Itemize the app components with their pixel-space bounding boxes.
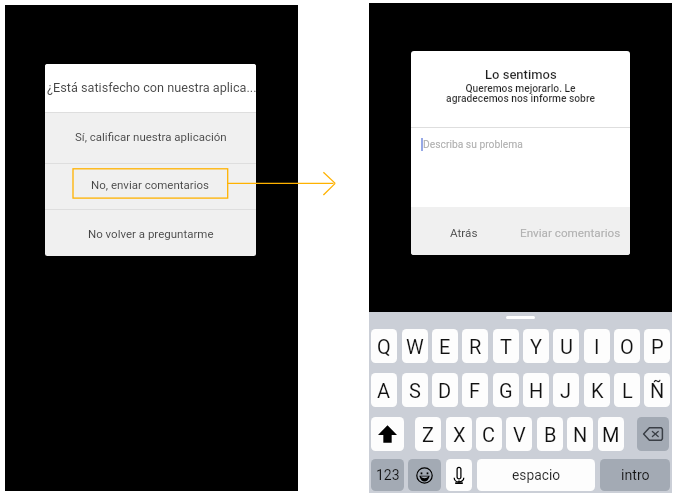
staticText: Z	[422, 423, 434, 446]
staticText: Y	[530, 335, 543, 358]
staticText: G	[499, 379, 513, 402]
staticText: H	[529, 379, 544, 402]
button[interactable]: Voice input	[446, 459, 472, 491]
button[interactable]: intro	[600, 459, 670, 491]
staticText: F	[469, 379, 481, 402]
staticText: espacio	[512, 467, 561, 483]
staticText: intro	[621, 467, 650, 484]
staticText: ¿Está satisfecho con nuestra aplica...	[47, 80, 256, 95]
button[interactable]: G	[493, 373, 519, 407]
staticText: U	[560, 335, 573, 358]
staticText: E	[439, 335, 451, 358]
button[interactable]: W	[402, 329, 428, 363]
button[interactable]: J	[553, 373, 579, 407]
button[interactable]: O	[614, 329, 640, 363]
button[interactable]: Q	[371, 329, 397, 363]
button[interactable]: D	[432, 373, 458, 407]
staticText: Describa su problema	[423, 138, 523, 150]
staticText: Sí, calificar nuestra aplicación	[75, 130, 227, 143]
staticText: N	[573, 423, 588, 446]
button[interactable]	[45, 64, 256, 112]
staticText: 123	[376, 467, 400, 483]
staticText: W	[406, 335, 424, 358]
staticText: I	[594, 335, 600, 358]
button[interactable]: K	[584, 373, 610, 407]
button[interactable]: Backspace	[637, 417, 669, 451]
staticText: Queremos mejorarlo. Le agradecemos nos i…	[446, 82, 595, 105]
button[interactable]: N	[567, 417, 593, 451]
staticText: J	[560, 379, 572, 402]
button[interactable]: espacio	[477, 459, 595, 491]
button[interactable]: H	[523, 373, 549, 407]
staticText: D	[438, 379, 452, 402]
staticText: Enviar comentarios	[520, 226, 621, 240]
staticText: T	[500, 335, 512, 358]
button[interactable]: ¿Está satisfecho con nuestra aplica...	[45, 64, 256, 112]
button[interactable]: Sí, calificar nuestra aplicación	[45, 112, 256, 164]
button[interactable]: I	[584, 329, 610, 363]
button[interactable]: X	[446, 417, 472, 451]
staticText: A	[377, 379, 391, 402]
button[interactable]: U	[553, 329, 579, 363]
staticText: No, enviar comentarios	[91, 178, 210, 191]
staticText: X	[453, 423, 466, 446]
button[interactable]: F	[462, 373, 488, 407]
button[interactable]: V	[506, 417, 532, 451]
button[interactable]: Ñ	[644, 373, 670, 407]
staticText: P	[651, 335, 664, 358]
button[interactable]: B	[537, 417, 563, 451]
button[interactable]: C	[476, 417, 502, 451]
button[interactable]: M	[598, 417, 624, 451]
staticText: Lo sentimos	[485, 67, 557, 82]
button[interactable]: Shift	[371, 417, 404, 451]
button[interactable]: E	[432, 329, 458, 363]
staticText: O	[620, 335, 634, 358]
staticText: V	[513, 423, 526, 446]
staticText: No volver a preguntarme	[88, 227, 214, 240]
button[interactable]: Enviar comentarios	[514, 207, 627, 255]
button[interactable]: Y	[523, 329, 549, 363]
staticText: C	[482, 423, 496, 446]
staticText: K	[591, 379, 604, 402]
staticText: R	[469, 335, 482, 358]
button[interactable]: Describa su problema	[411, 128, 630, 207]
button[interactable]: Atrás	[428, 207, 499, 255]
staticText: B	[544, 423, 557, 446]
button[interactable]: Emoji	[408, 459, 441, 491]
staticText: L	[622, 379, 633, 402]
button[interactable]: A	[371, 373, 397, 407]
button[interactable]: P	[644, 329, 670, 363]
staticText: Q	[377, 335, 391, 358]
button[interactable]: No volver a preguntarme	[45, 209, 256, 256]
button[interactable]: No, enviar comentarios	[45, 163, 256, 209]
button[interactable]: S	[402, 373, 428, 407]
staticText: M	[602, 423, 620, 446]
button[interactable]: T	[493, 329, 519, 363]
button[interactable]: R	[462, 329, 488, 363]
button[interactable]: L	[614, 373, 640, 407]
button[interactable]: 123	[371, 459, 404, 491]
staticText: S	[409, 379, 421, 402]
button[interactable]: Z	[415, 417, 441, 451]
staticText: Atrás	[450, 226, 478, 240]
staticText: Ñ	[650, 379, 665, 402]
